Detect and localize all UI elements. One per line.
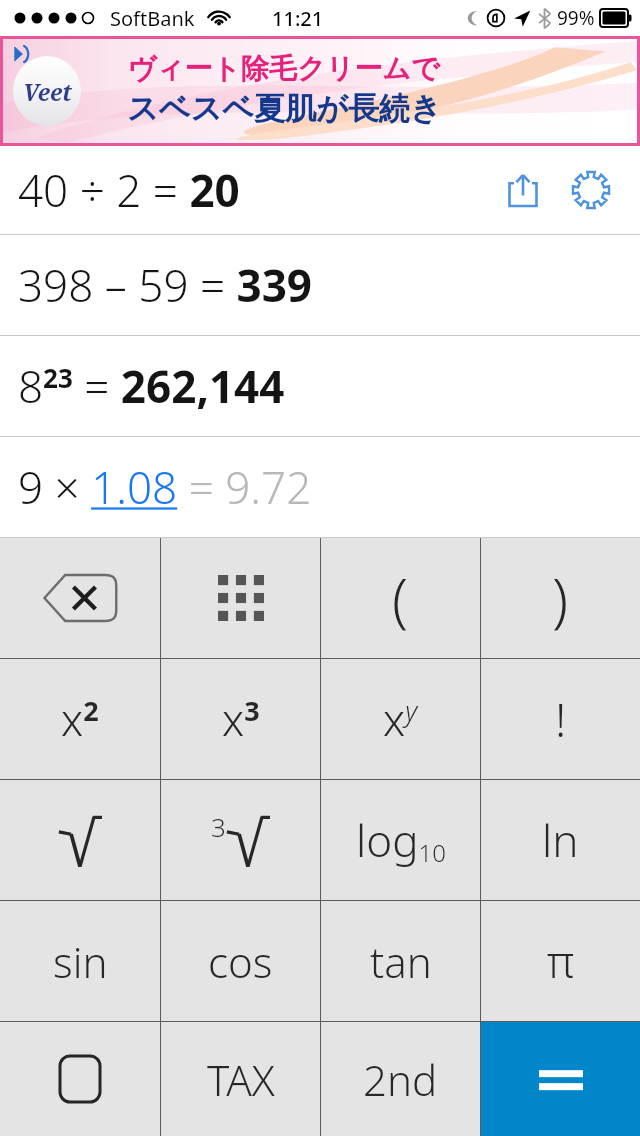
button[interactable]: Settings xyxy=(564,163,618,217)
staticText: 398 – 59 = 339 xyxy=(18,255,313,315)
staticText: 99% xyxy=(557,5,595,31)
button[interactable]: x to the y xyxy=(321,659,480,779)
button[interactable]: Cosine xyxy=(161,901,320,1021)
button[interactable]: Square root xyxy=(0,780,160,900)
staticText: ( xyxy=(392,559,409,638)
staticText: ! xyxy=(555,688,567,751)
staticText: 3 xyxy=(211,809,226,844)
staticText: スベスベ夏肌が長続き xyxy=(127,89,442,128)
staticText: log10 xyxy=(356,810,446,870)
staticText: cos xyxy=(208,933,273,990)
staticText: x2 xyxy=(61,689,99,749)
staticText: 9 × 1.08 = 9.72 xyxy=(18,457,312,517)
staticText: 40 ÷ 2 = 20 xyxy=(18,160,240,220)
button[interactable]: 9 × 1.08 = 9.72 xyxy=(0,437,640,537)
button[interactable]: Cube root xyxy=(161,780,320,900)
button[interactable]: x to the 2 xyxy=(0,659,160,779)
staticText: 823 = 262,144 xyxy=(18,356,285,416)
staticText: Veet xyxy=(23,76,72,107)
button[interactable]: Factorial xyxy=(481,659,640,779)
staticText: π xyxy=(547,931,575,991)
button[interactable]: Natural log xyxy=(481,780,640,900)
staticText: ヴィート除毛クリームで xyxy=(127,51,440,86)
button[interactable]: Sine xyxy=(0,901,160,1021)
button[interactable]: 398 – 59 = 339 xyxy=(0,235,640,335)
button[interactable]: Tax xyxy=(161,1022,320,1136)
staticText: SoftBank xyxy=(110,5,195,32)
staticText: tan xyxy=(370,933,432,990)
staticText: x3 xyxy=(222,689,260,749)
staticText: ln xyxy=(542,810,579,870)
button[interactable]: Tangent xyxy=(321,901,480,1021)
button[interactable]: 823 = 262,144 xyxy=(0,336,640,436)
staticText: ) xyxy=(552,559,569,638)
button[interactable]: Equals xyxy=(481,1022,640,1136)
button[interactable]: Memory xyxy=(0,1022,160,1136)
staticText: TAX xyxy=(207,1051,275,1108)
button[interactable]: Second function xyxy=(321,1022,480,1136)
staticText: 2nd xyxy=(363,1051,438,1108)
button[interactable]: Number pad xyxy=(161,538,320,658)
button[interactable]: Advertisement xyxy=(0,36,640,146)
button[interactable]: log base 10 xyxy=(321,780,480,900)
button[interactable]: Open parenthesis xyxy=(321,538,480,658)
button[interactable]: 40 ÷ 2 = 20 xyxy=(0,146,640,234)
button[interactable]: Share xyxy=(496,163,550,217)
button[interactable]: Close parenthesis xyxy=(481,538,640,658)
button[interactable]: x to the 3 xyxy=(161,659,320,779)
staticText: sin xyxy=(53,933,108,990)
button[interactable]: Backspace xyxy=(0,538,160,658)
button[interactable]: Pi xyxy=(481,901,640,1021)
staticText: xy xyxy=(383,689,418,749)
staticText: 11:21 xyxy=(272,5,324,32)
